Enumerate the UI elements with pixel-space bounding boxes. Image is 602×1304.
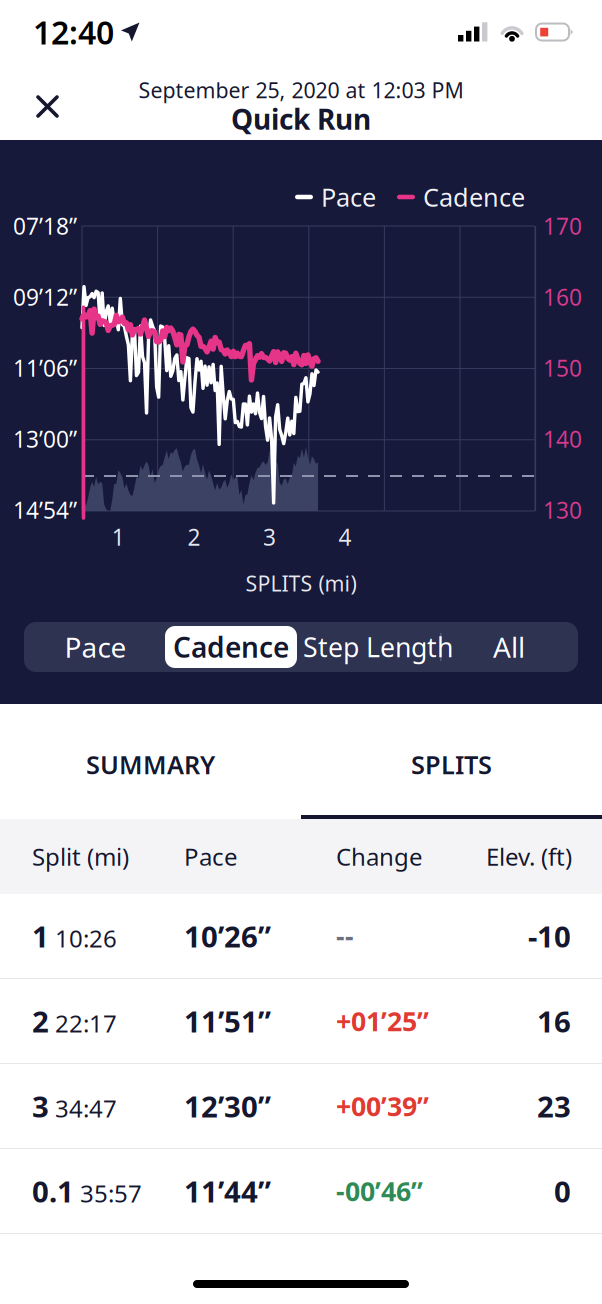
staticText: SPLITS (mi) (245, 569, 356, 597)
staticText: 12:40 (33, 11, 114, 53)
button[interactable]: SUMMARY (0, 704, 301, 819)
staticText: 170 (543, 211, 582, 241)
staticText: SUMMARY (86, 748, 215, 781)
staticText: 22:17 (55, 1007, 117, 1039)
staticText: Split (mi) (32, 841, 129, 872)
staticText: SPLITS (411, 748, 492, 781)
staticText: 130 (543, 495, 582, 525)
staticText: September 25, 2020 at 12:03 PM (138, 76, 463, 104)
staticText: 35:57 (80, 1177, 142, 1209)
staticText: 160 (543, 282, 582, 312)
staticText: 11’06” (13, 353, 77, 383)
staticText: Pace (184, 841, 238, 872)
staticText: +00’39” (336, 1088, 429, 1124)
staticText: -00’46” (336, 1173, 423, 1209)
button[interactable]: SPLITS (301, 704, 602, 819)
staticText: 09’12” (13, 282, 77, 312)
staticText: 10:26 (55, 922, 117, 954)
staticText: 11’51” (184, 1001, 271, 1040)
button[interactable]: 3 (0, 1064, 602, 1148)
button[interactable]: 2 (0, 979, 602, 1063)
staticText: 14’54” (13, 495, 77, 525)
staticText: 16 (537, 1001, 571, 1040)
staticText: 1 (112, 522, 125, 552)
staticText: +01’25” (336, 1003, 429, 1039)
staticText: Step Length (303, 629, 453, 665)
staticText: 150 (543, 353, 582, 383)
button[interactable]: Close (22, 81, 73, 132)
staticText: 2 (187, 522, 200, 552)
button[interactable]: Step Length (316, 622, 440, 672)
staticText: 12’30” (184, 1086, 271, 1125)
button[interactable]: Cadence (165, 622, 297, 672)
button[interactable]: All (440, 622, 578, 672)
button[interactable]: 1 (0, 894, 602, 978)
staticText: 3 (263, 522, 276, 552)
staticText: Pace (321, 180, 376, 214)
staticText: Quick Run (231, 100, 371, 138)
staticText: Change (336, 841, 423, 872)
staticText: 4 (339, 522, 352, 552)
staticText: Elev. (ft) (486, 841, 572, 872)
staticText: All (493, 628, 525, 666)
staticText: 07’18” (13, 211, 77, 241)
staticText: 34:47 (55, 1092, 117, 1124)
staticText: 10’26” (184, 916, 271, 955)
staticText: 13’00” (13, 424, 77, 454)
staticText: 1 (32, 916, 49, 955)
staticText: 0.1 (32, 1171, 74, 1210)
button[interactable]: 0.1 (0, 1149, 602, 1233)
staticText: Pace (64, 628, 126, 666)
staticText: Cadence (423, 180, 525, 214)
staticText: 140 (543, 424, 582, 454)
button[interactable]: Pace (25, 622, 166, 672)
staticText: -10 (528, 916, 571, 955)
staticText: 3 (32, 1086, 49, 1125)
staticText: -- (336, 918, 354, 954)
staticText: 23 (537, 1086, 571, 1125)
staticText: Cadence (173, 628, 289, 666)
staticText: 0 (554, 1171, 571, 1210)
staticText: 11’44” (184, 1171, 271, 1210)
staticText: 2 (32, 1001, 49, 1040)
